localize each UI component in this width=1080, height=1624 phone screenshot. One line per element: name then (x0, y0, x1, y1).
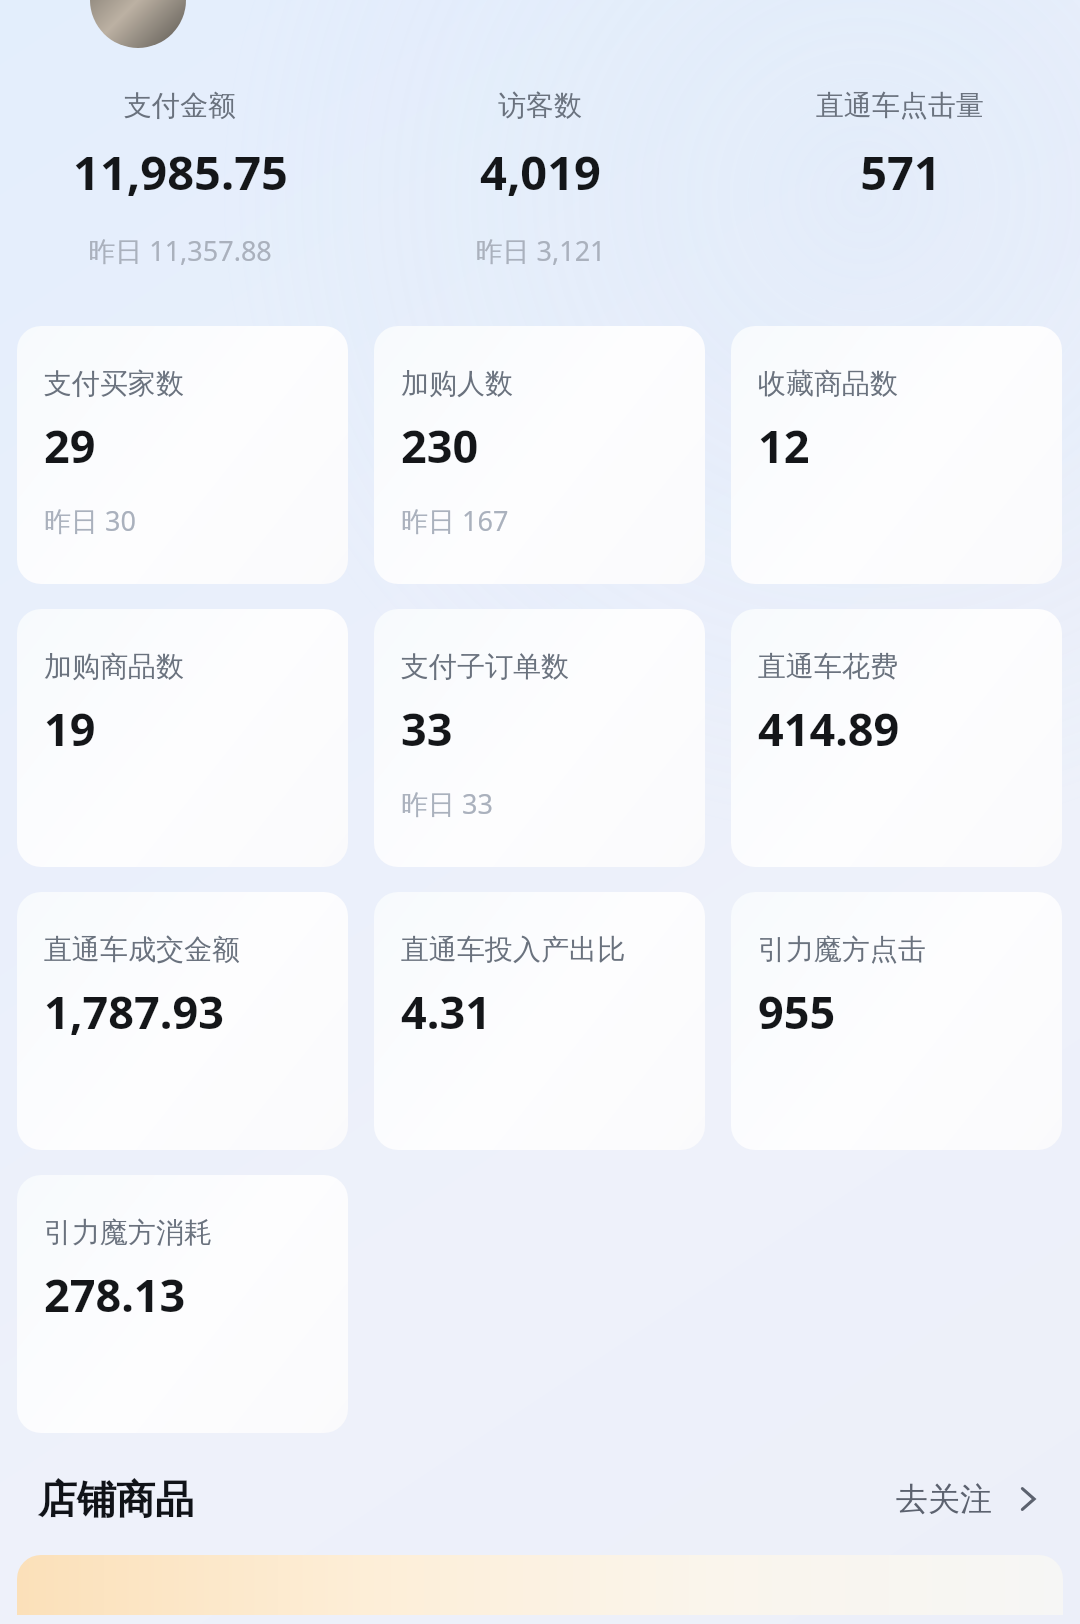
staticText: 昨日 167 (401, 502, 509, 539)
staticText: 昨日 3,121 (475, 232, 606, 269)
staticText: 直通车点击量 (816, 88, 984, 123)
staticText: 4,019 (480, 140, 601, 204)
button[interactable]: 店铺商品 (38, 1475, 194, 1524)
button[interactable]: 引力魔方点击 (731, 892, 1062, 1150)
staticText: 引力魔方消耗 (44, 1215, 212, 1250)
staticText: 直通车投入产出比 (401, 932, 625, 967)
staticText: 去关注 (896, 1479, 992, 1519)
staticText: 直通车成交金额 (44, 932, 240, 967)
button[interactable] (17, 1555, 1063, 1615)
staticText: 29 (44, 415, 96, 476)
button[interactable]: 支付子订单数 (374, 609, 705, 867)
staticText: 支付买家数 (44, 366, 184, 401)
staticText: 1,787.93 (44, 981, 224, 1042)
button[interactable]: 加购人数 (374, 326, 705, 584)
button[interactable]: Shop avatar (90, 0, 186, 48)
staticText: 支付子订单数 (401, 649, 569, 684)
button[interactable]: 加购商品数 (17, 609, 348, 867)
staticText: 昨日 33 (401, 785, 493, 822)
button[interactable]: 去关注 (896, 1479, 1042, 1519)
staticText: 278.13 (44, 1264, 186, 1325)
button[interactable]: 支付买家数 (17, 326, 348, 584)
button[interactable]: 直通车成交金额 (17, 892, 348, 1150)
staticText: 加购人数 (401, 366, 513, 401)
staticText: 访客数 (498, 88, 582, 123)
staticText: 955 (758, 981, 836, 1042)
staticText: 414.89 (758, 698, 900, 759)
button[interactable]: 直通车花费 (731, 609, 1062, 867)
staticText: 引力魔方点击 (758, 932, 926, 967)
button[interactable]: 引力魔方消耗 (17, 1175, 348, 1433)
staticText: 昨日 30 (44, 502, 136, 539)
staticText: 11,985.75 (73, 140, 288, 204)
staticText: 19 (44, 698, 96, 759)
button[interactable]: 访客数 (360, 88, 720, 269)
button[interactable]: 直通车点击量 (720, 88, 1080, 204)
staticText: 收藏商品数 (758, 366, 898, 401)
staticText: 支付金额 (124, 88, 236, 123)
staticText: 昨日 11,357.88 (88, 232, 272, 269)
staticText: 230 (401, 415, 479, 476)
staticText: 571 (860, 140, 941, 204)
staticText: 33 (401, 698, 453, 759)
button[interactable]: 收藏商品数 (731, 326, 1062, 584)
button[interactable]: 支付金额 (0, 88, 360, 269)
button[interactable]: 直通车投入产出比 (374, 892, 705, 1150)
staticText: 直通车花费 (758, 649, 898, 684)
staticText: 4.31 (401, 981, 491, 1042)
staticText: 12 (758, 415, 810, 476)
staticText: 加购商品数 (44, 649, 184, 684)
